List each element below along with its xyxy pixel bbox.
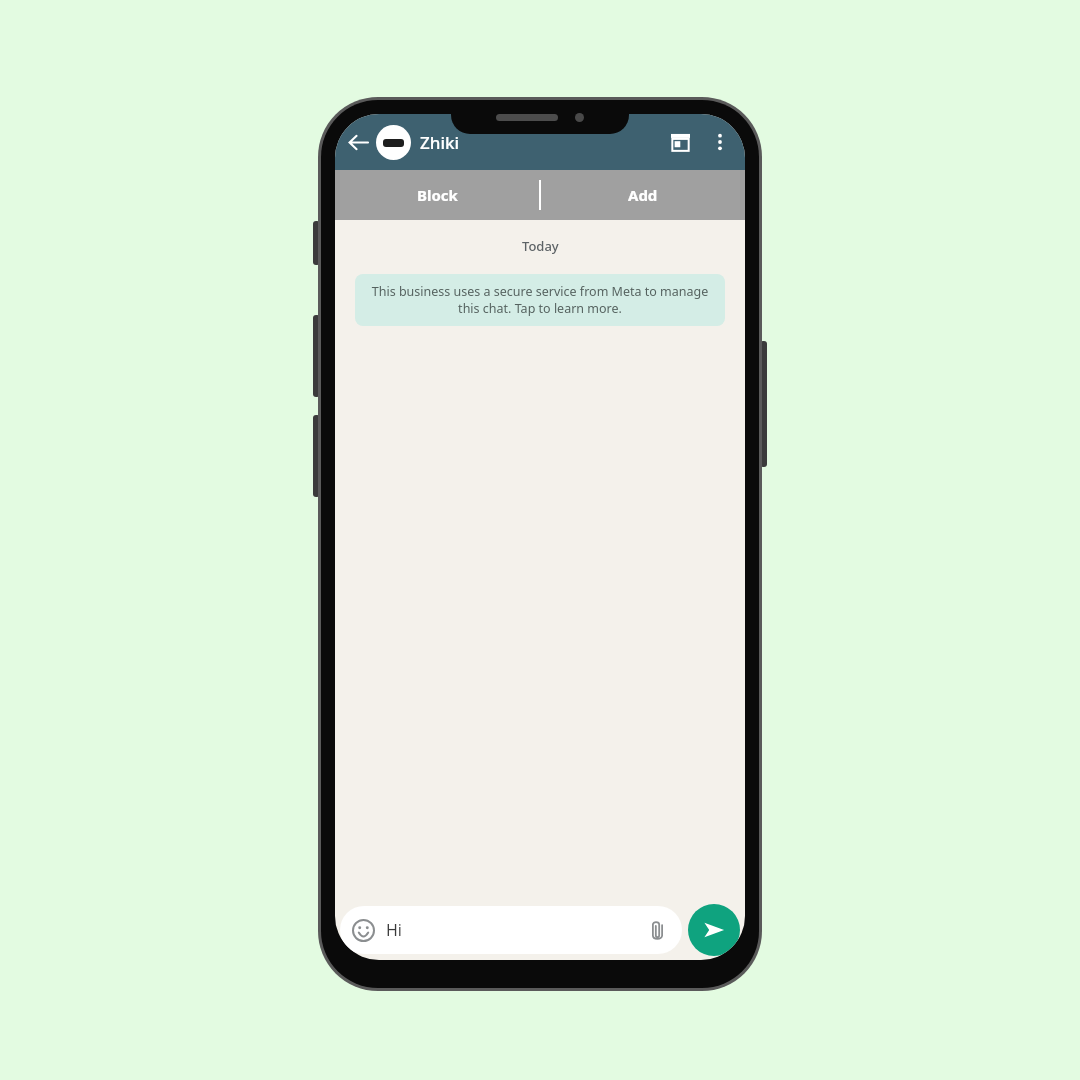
button[interactable]: Add	[541, 170, 745, 220]
button[interactable]: More options	[700, 122, 740, 162]
button[interactable]: Send	[688, 904, 740, 956]
button[interactable]: Profile photo	[376, 125, 411, 160]
button[interactable]: This business uses a secure service from…	[355, 274, 725, 326]
button[interactable]: Block	[335, 170, 539, 220]
button[interactable]: Business profile	[660, 122, 700, 162]
staticText: Today	[522, 237, 559, 255]
staticText: Hi	[386, 919, 402, 941]
button[interactable]: Hi	[340, 906, 682, 954]
staticText: Block	[417, 185, 458, 205]
button[interactable]: Back	[340, 124, 376, 160]
staticText: This business uses a secure service from…	[368, 283, 712, 317]
button[interactable]: Zhiki	[420, 131, 460, 154]
staticText: Add	[628, 185, 658, 205]
button[interactable]: Attach	[644, 917, 670, 943]
